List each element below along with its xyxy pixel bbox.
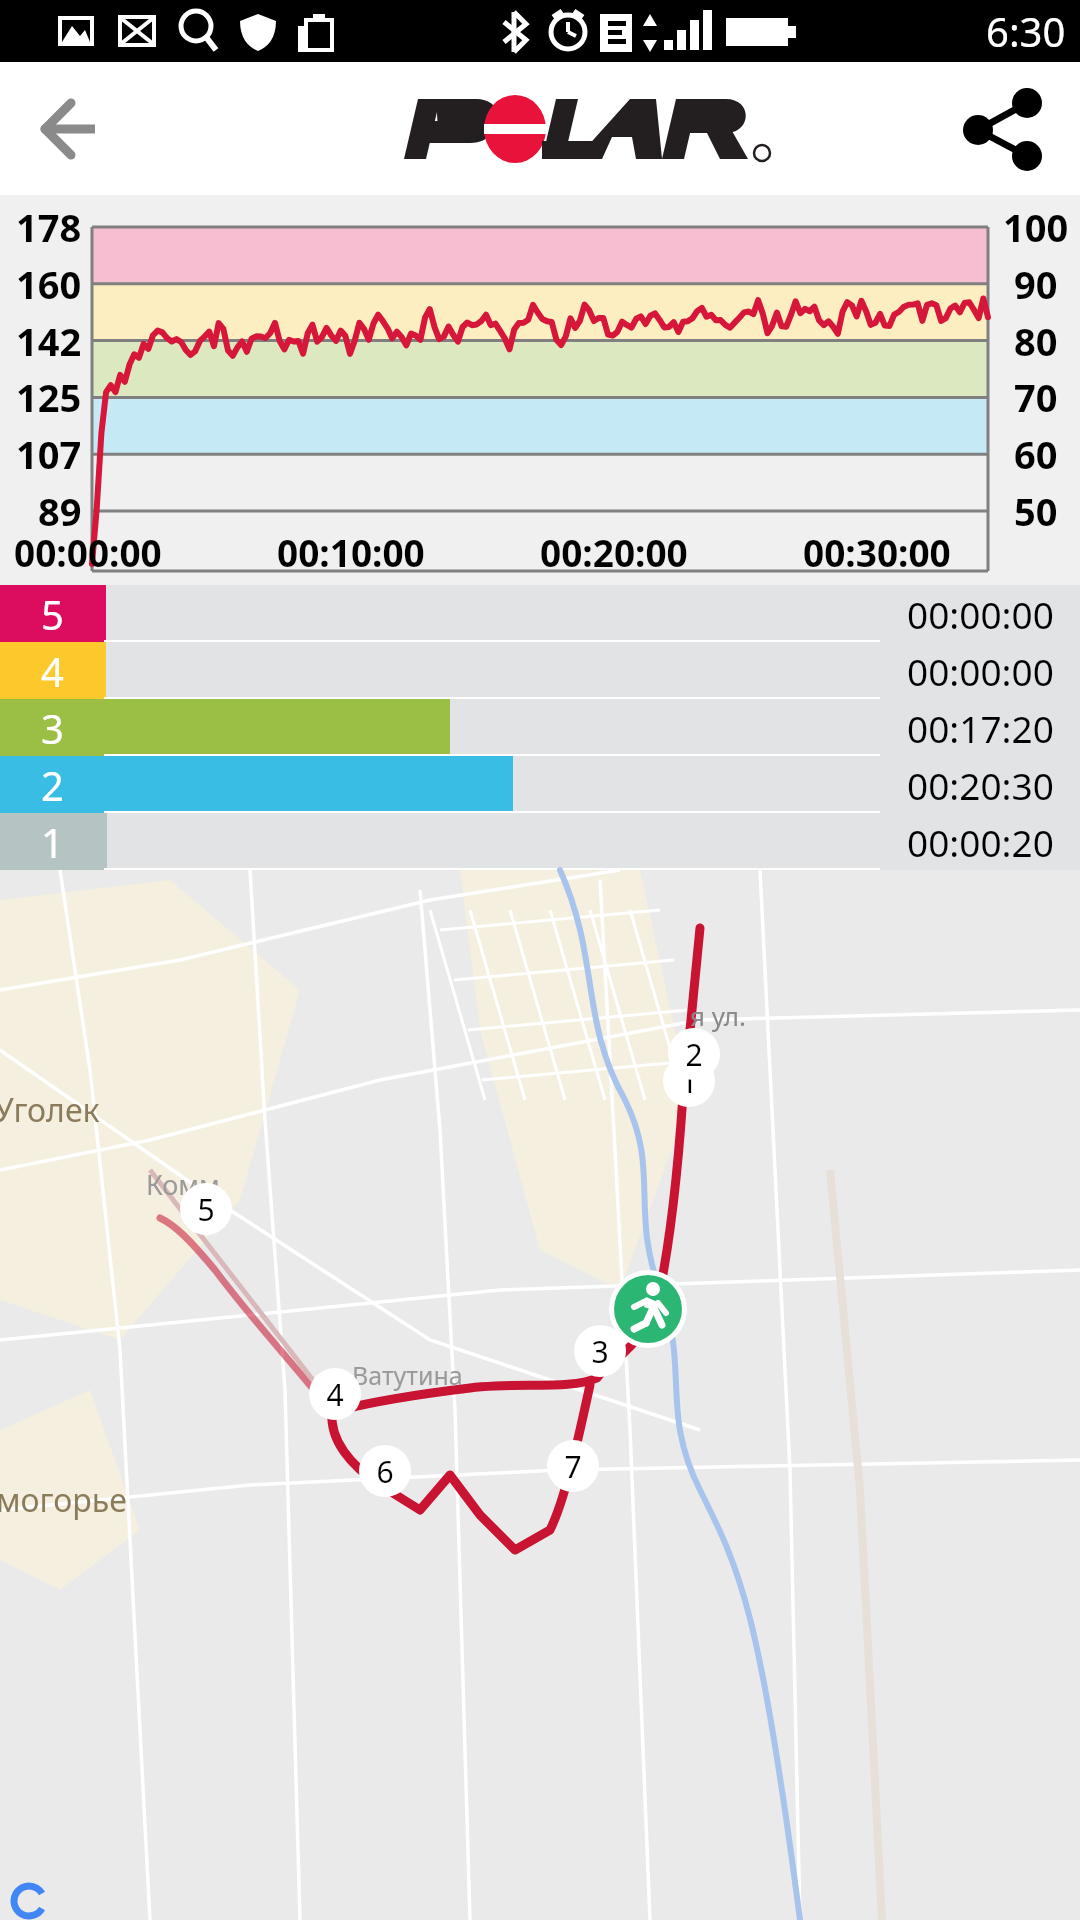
staticText: 107 xyxy=(16,428,82,480)
staticText: 178 xyxy=(16,201,82,253)
staticText: 3 xyxy=(41,701,64,755)
staticText: 1 xyxy=(680,1061,698,1102)
staticText: 50 xyxy=(1014,485,1058,537)
staticText: 00:20:00 xyxy=(540,527,688,577)
staticText: 00:10:00 xyxy=(277,527,425,577)
button[interactable]: Share xyxy=(962,86,1048,172)
staticText: 00:00:00 xyxy=(907,589,1054,639)
staticText: 5 xyxy=(197,1189,215,1230)
button[interactable]: 3 xyxy=(574,1325,626,1377)
staticText: 4 xyxy=(326,1374,344,1415)
staticText: 2 xyxy=(41,758,64,812)
staticText: 4 xyxy=(41,644,64,698)
staticText: 90 xyxy=(1014,258,1058,310)
staticText: 89 xyxy=(38,485,82,537)
button[interactable]: 4 xyxy=(0,642,1080,699)
staticText: Ватутина xyxy=(352,1358,463,1392)
button[interactable]: 6 xyxy=(359,1445,411,1497)
button[interactable]: 1 xyxy=(0,813,1080,870)
staticText: 3 xyxy=(591,1331,609,1372)
staticText: 6 xyxy=(376,1451,394,1492)
staticText: 142 xyxy=(16,315,82,367)
staticText: 80 xyxy=(1014,315,1058,367)
button[interactable]: 2 xyxy=(668,1028,720,1080)
staticText: 125 xyxy=(16,371,82,423)
staticText: 00:20:30 xyxy=(907,760,1054,810)
staticText: 6:30 xyxy=(986,4,1066,58)
staticText: 70 xyxy=(1014,371,1058,423)
button[interactable]: 3 xyxy=(0,699,1080,756)
staticText: могорье xyxy=(0,1478,127,1522)
button[interactable]: 4 xyxy=(309,1368,361,1420)
staticText: Уголек xyxy=(0,1088,100,1132)
button[interactable]: Activity start xyxy=(609,1270,687,1348)
staticText: 00:00:00 xyxy=(907,646,1054,696)
button[interactable]: 2 xyxy=(0,756,1080,813)
staticText: 00:30:00 xyxy=(803,527,951,577)
staticText: 1 xyxy=(41,815,64,869)
staticText: 7 xyxy=(564,1446,582,1487)
staticText: 00:00:00 xyxy=(14,527,162,577)
staticText: 60 xyxy=(1014,428,1058,480)
button[interactable]: 5 xyxy=(0,585,1080,642)
button[interactable]: Back xyxy=(26,86,112,172)
staticText: 100 xyxy=(1003,201,1069,253)
staticText: 2 xyxy=(685,1034,703,1075)
staticText: 5 xyxy=(41,587,64,641)
staticText: я ул. xyxy=(690,998,746,1033)
staticText: 160 xyxy=(16,258,82,310)
staticText: Комм xyxy=(146,1166,220,1203)
button[interactable]: 5 xyxy=(180,1183,232,1235)
staticText: 00:17:20 xyxy=(907,703,1054,753)
button[interactable]: Route map xyxy=(0,870,1080,1920)
button[interactable]: 7 xyxy=(547,1440,599,1492)
staticText: 00:00:20 xyxy=(907,817,1054,867)
button[interactable]: 1 xyxy=(663,1055,715,1107)
